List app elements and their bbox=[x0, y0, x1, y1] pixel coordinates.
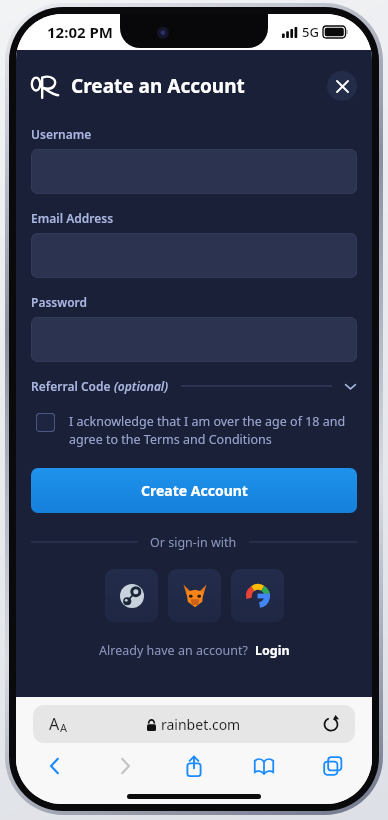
staticText: 12:02 PM bbox=[47, 22, 113, 42]
button[interactable]: Create Account bbox=[31, 468, 357, 513]
other: Expand referral code bbox=[344, 380, 357, 393]
staticText: Login bbox=[255, 642, 290, 659]
staticText: Already have an account? bbox=[99, 642, 248, 659]
button[interactable]: Forward bbox=[108, 751, 142, 781]
button[interactable]: Sign in with MetaMask bbox=[168, 569, 221, 622]
staticText: rainbet.com bbox=[161, 715, 241, 734]
staticText: Create an Account bbox=[71, 73, 245, 99]
button[interactable]: Reload bbox=[320, 713, 342, 735]
staticText: A bbox=[60, 720, 68, 735]
button[interactable]: Back bbox=[38, 751, 72, 781]
button[interactable]: Already have an account? bbox=[31, 642, 357, 659]
staticText: A bbox=[49, 713, 60, 735]
button[interactable]: Close bbox=[327, 71, 357, 101]
button[interactable]: Sign in with Steam bbox=[105, 569, 158, 622]
staticText: (optional) bbox=[114, 378, 169, 394]
staticText: I acknowledge that I am over the age of … bbox=[69, 413, 357, 448]
button[interactable]: Bookmarks bbox=[247, 751, 281, 781]
staticText: Referral Code bbox=[31, 378, 114, 394]
staticText: Or sign-in with bbox=[150, 534, 237, 551]
staticText: Password bbox=[31, 294, 88, 310]
button[interactable]: I acknowledge that I am over the age of … bbox=[31, 413, 357, 448]
staticText: Email Address bbox=[31, 210, 114, 226]
staticText: 5G bbox=[302, 23, 319, 41]
button[interactable]: Share bbox=[177, 751, 211, 781]
button[interactable]: Sign in with Google bbox=[231, 569, 284, 622]
staticText: Username bbox=[31, 126, 92, 142]
button[interactable]: Tabs bbox=[316, 751, 350, 781]
staticText: Create Account bbox=[141, 481, 248, 500]
button[interactable]: Referral Code bbox=[31, 378, 357, 394]
button[interactable]: Address bar bbox=[33, 705, 355, 743]
